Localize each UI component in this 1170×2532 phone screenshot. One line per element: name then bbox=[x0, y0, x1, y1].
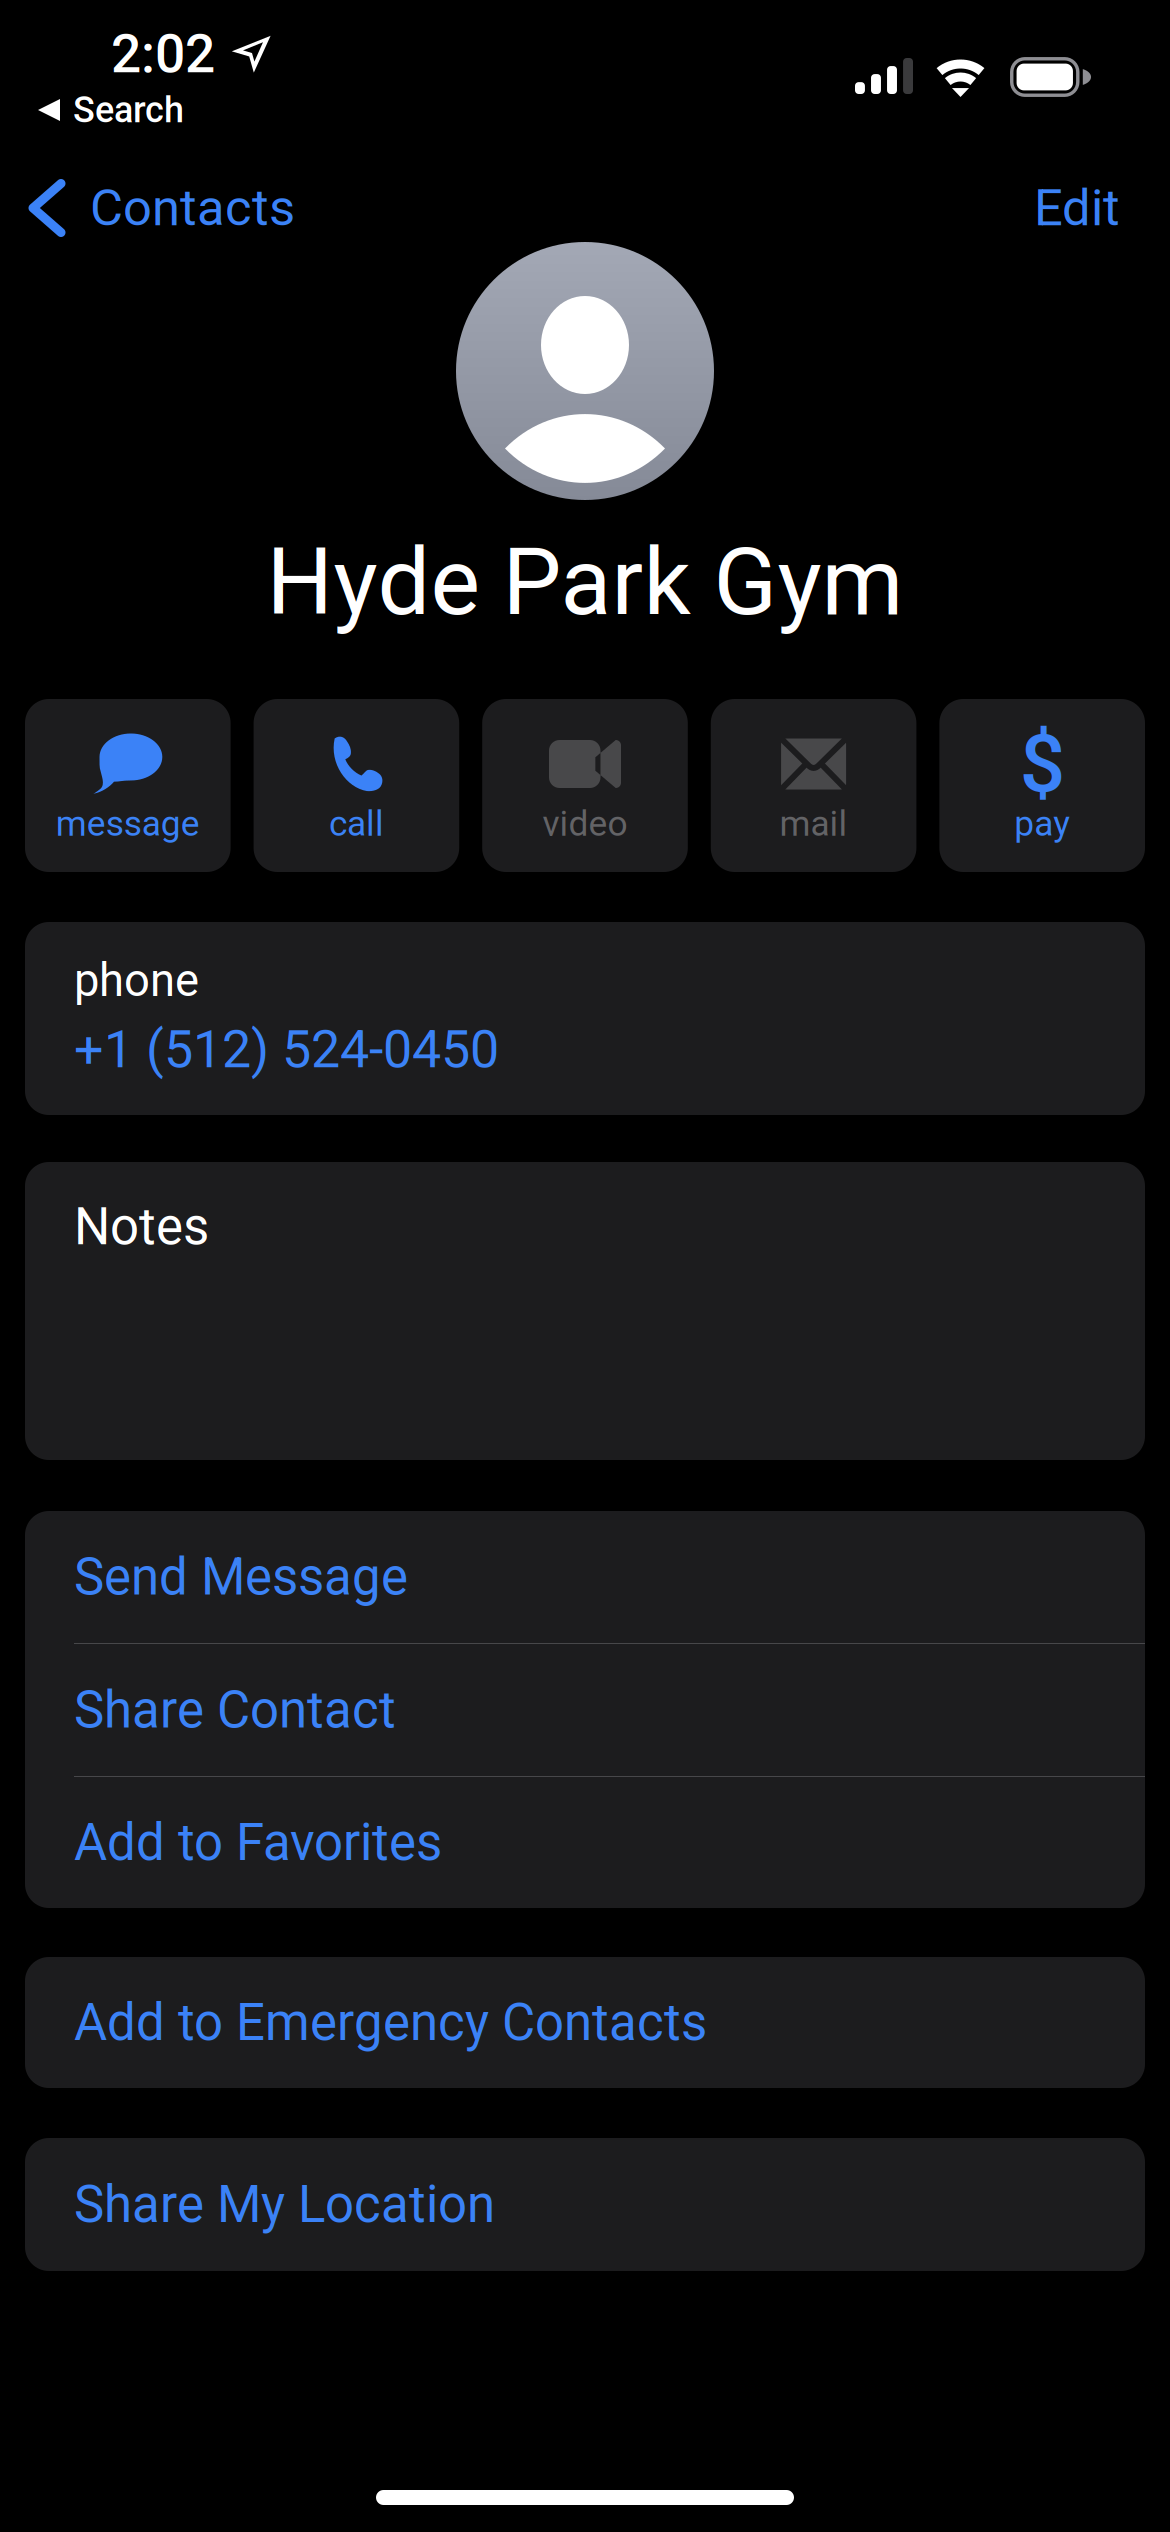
staticText: Add to Emergency Contacts bbox=[74, 1993, 707, 2052]
staticText: Edit bbox=[1034, 178, 1120, 238]
button[interactable]: $ bbox=[939, 699, 1145, 872]
button[interactable]: Add to Favorites bbox=[25, 1777, 1145, 1908]
staticText: Send Message bbox=[74, 1547, 408, 1607]
staticText: Search bbox=[73, 89, 184, 131]
staticText: Hyde Park Gym bbox=[266, 527, 903, 637]
staticText: phone bbox=[74, 954, 199, 1007]
staticText: Contacts bbox=[90, 178, 295, 238]
button[interactable]: Share Contact bbox=[25, 1644, 1145, 1776]
button[interactable]: video bbox=[482, 699, 688, 872]
staticText: Notes bbox=[74, 1197, 209, 1257]
button[interactable]: Add to Emergency Contacts bbox=[25, 1957, 1145, 2088]
button[interactable]: message bbox=[25, 699, 231, 872]
button[interactable]: phone bbox=[25, 922, 1145, 1115]
button[interactable]: mail bbox=[711, 699, 916, 872]
staticText: +1 (512) 524-0450 bbox=[74, 1019, 499, 1080]
button[interactable]: Contacts bbox=[0, 177, 319, 239]
staticText: Share My Location bbox=[74, 2175, 495, 2234]
button[interactable]: Send Message bbox=[25, 1511, 1145, 1643]
staticText: 2:02 bbox=[111, 23, 215, 85]
button[interactable]: Share My Location bbox=[25, 2138, 1145, 2271]
staticText: pay bbox=[1014, 803, 1070, 844]
staticText: $ bbox=[1020, 717, 1065, 811]
button[interactable]: call bbox=[254, 699, 459, 872]
staticText: video bbox=[542, 803, 627, 844]
button[interactable]: Edit bbox=[1000, 177, 1170, 239]
staticText: message bbox=[56, 803, 200, 844]
button[interactable]: Search bbox=[38, 94, 184, 126]
staticText: Share Contact bbox=[74, 1680, 396, 1740]
staticText: call bbox=[329, 803, 384, 844]
staticText: Add to Favorites bbox=[74, 1813, 442, 1872]
staticText: mail bbox=[780, 803, 848, 844]
button[interactable]: Notes bbox=[25, 1162, 1145, 1460]
